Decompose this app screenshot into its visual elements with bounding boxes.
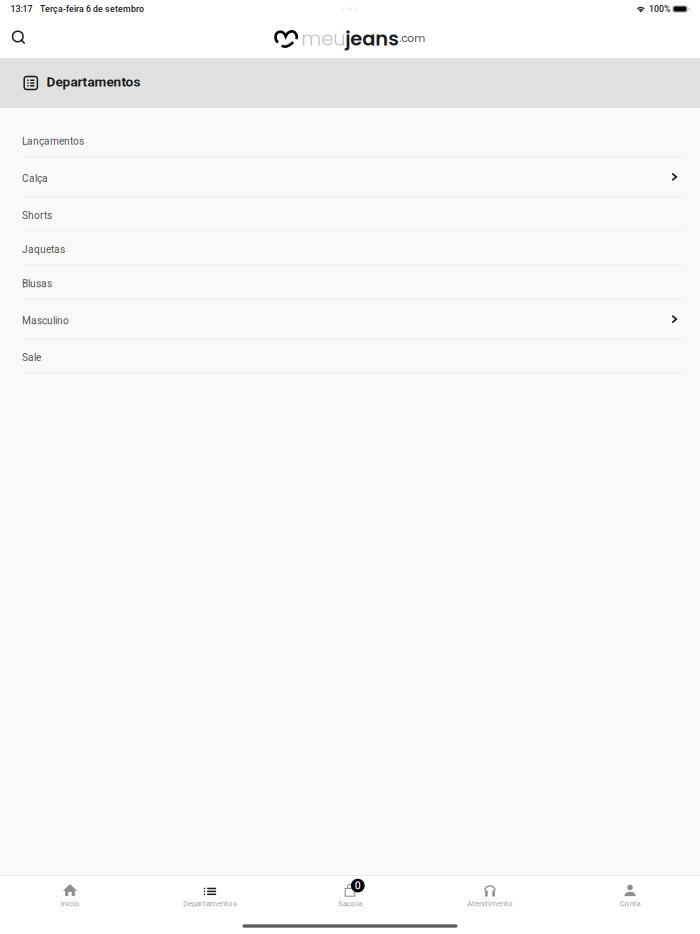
staticText: 0 — [355, 879, 361, 892]
staticText: Lançamentos — [22, 135, 84, 147]
button[interactable]: Blusas — [0, 265, 700, 300]
staticText: Atendimento — [467, 899, 513, 908]
button[interactable]: Lançamentos — [0, 123, 700, 157]
staticText: 100% — [649, 4, 670, 14]
staticText: Masculino — [22, 315, 69, 327]
button[interactable]: Início — [0, 876, 140, 918]
button[interactable]: Buscar — [5, 23, 33, 53]
button[interactable]: Masculino — [0, 300, 700, 339]
button[interactable]: 0 — [280, 876, 420, 918]
staticText: 13:17 — [10, 4, 32, 14]
button[interactable]: Conta — [560, 876, 700, 918]
staticText: Sacola — [338, 899, 362, 908]
staticText: Jaquetas — [22, 244, 65, 255]
staticText: Início — [60, 899, 79, 908]
staticText: Blusas — [22, 278, 52, 290]
button[interactable]: Jaquetas — [0, 231, 700, 265]
button[interactable]: Departamentos — [140, 876, 280, 918]
staticText: Sale — [22, 352, 41, 364]
staticText: Calça — [22, 173, 48, 185]
staticText: Shorts — [22, 210, 52, 221]
staticText: meu — [301, 25, 345, 52]
button[interactable]: meujeans.com — [275, 24, 425, 52]
staticText: jeans — [345, 25, 399, 52]
staticText: .com — [399, 31, 425, 46]
staticText: Conta — [619, 899, 640, 908]
staticText: Departamentos — [47, 74, 141, 90]
button[interactable]: Sale — [0, 339, 700, 373]
staticText: Departamentos — [183, 899, 237, 908]
button[interactable]: Shorts — [0, 197, 700, 231]
staticText: Terça-feira 6 de setembro — [40, 4, 144, 14]
button[interactable]: Calça — [0, 157, 700, 197]
button[interactable]: Atendimento — [420, 876, 560, 918]
